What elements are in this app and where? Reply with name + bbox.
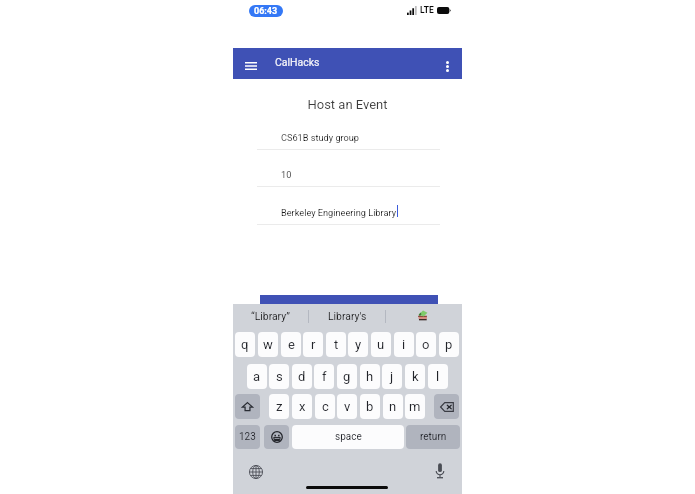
button[interactable]: s xyxy=(269,364,289,389)
button[interactable]: e xyxy=(281,332,301,357)
button[interactable]: g xyxy=(337,364,357,389)
staticText: “Library” xyxy=(251,310,290,322)
staticText: p xyxy=(445,337,453,352)
staticText: a xyxy=(253,369,261,384)
staticText: 123 xyxy=(239,431,256,443)
staticText: e xyxy=(288,337,295,352)
staticText: 10 xyxy=(281,169,292,180)
button[interactable]: t xyxy=(326,332,346,357)
staticText: v xyxy=(344,399,351,414)
staticText: t xyxy=(334,337,339,352)
button[interactable]: w xyxy=(258,332,278,357)
staticText: q xyxy=(241,337,249,352)
staticText: m xyxy=(409,399,421,414)
staticText: k xyxy=(412,369,419,384)
staticText: i xyxy=(402,337,406,352)
staticText: x xyxy=(299,399,306,414)
staticText: c xyxy=(322,399,329,414)
staticText: b xyxy=(366,399,374,414)
button[interactable]: d xyxy=(292,364,312,389)
staticText: u xyxy=(377,337,385,352)
button[interactable]: Shift xyxy=(235,394,260,419)
button[interactable]: r xyxy=(303,332,323,357)
button[interactable]: return xyxy=(406,425,460,449)
button[interactable]: l xyxy=(428,364,448,389)
button[interactable] xyxy=(386,304,462,328)
button[interactable]: a xyxy=(247,364,267,389)
button[interactable]: 123 xyxy=(235,425,260,449)
button[interactable]: n xyxy=(383,394,403,419)
staticText: CS61B study group xyxy=(281,132,360,143)
staticText: w xyxy=(263,337,273,352)
button[interactable]: Open navigation drawer xyxy=(239,54,263,78)
staticText: Host an Event xyxy=(233,97,462,112)
button[interactable]: Emoji keyboard xyxy=(264,425,289,449)
button[interactable]: j xyxy=(382,364,402,389)
button[interactable]: Next keyboard xyxy=(249,465,263,479)
staticText: g xyxy=(343,369,351,384)
button[interactable]: u xyxy=(371,332,391,357)
staticText: return xyxy=(420,431,447,443)
staticText: 06:43 xyxy=(254,6,278,17)
staticText: r xyxy=(311,337,316,352)
button[interactable]: space xyxy=(292,425,404,449)
staticText: h xyxy=(366,369,374,384)
button[interactable]: p xyxy=(439,332,459,357)
button[interactable]: More options xyxy=(435,54,459,78)
button[interactable]: x xyxy=(292,394,312,419)
button[interactable]: q xyxy=(235,332,255,357)
button[interactable]: o xyxy=(416,332,436,357)
button[interactable]: “Library” xyxy=(233,304,308,328)
staticText: Berkeley Engineering Library xyxy=(281,207,397,218)
staticText: z xyxy=(276,399,283,414)
staticText: n xyxy=(389,399,397,414)
staticText: s xyxy=(276,369,283,384)
button[interactable]: Delete xyxy=(434,394,459,419)
staticText: Library's xyxy=(328,310,367,322)
button[interactable]: Library's xyxy=(309,304,385,328)
button[interactable]: h xyxy=(360,364,380,389)
button[interactable]: Dictation xyxy=(432,463,448,479)
staticText: CalHacks xyxy=(275,56,320,68)
staticText: f xyxy=(322,369,327,384)
button[interactable]: i xyxy=(394,332,414,357)
staticText: l xyxy=(436,369,440,384)
staticText: y xyxy=(355,337,362,352)
button[interactable]: y xyxy=(348,332,368,357)
staticText: LTE xyxy=(420,5,434,15)
staticText: o xyxy=(422,337,430,352)
button[interactable]: m xyxy=(405,394,425,419)
button[interactable]: v xyxy=(337,394,357,419)
button[interactable]: f xyxy=(314,364,334,389)
button[interactable]: z xyxy=(269,394,289,419)
staticText: j xyxy=(390,369,394,384)
button[interactable]: Submit xyxy=(260,295,438,313)
staticText: space xyxy=(335,431,362,443)
button[interactable]: k xyxy=(405,364,425,389)
button[interactable]: b xyxy=(360,394,380,419)
staticText: d xyxy=(298,369,306,384)
button[interactable]: c xyxy=(315,394,335,419)
